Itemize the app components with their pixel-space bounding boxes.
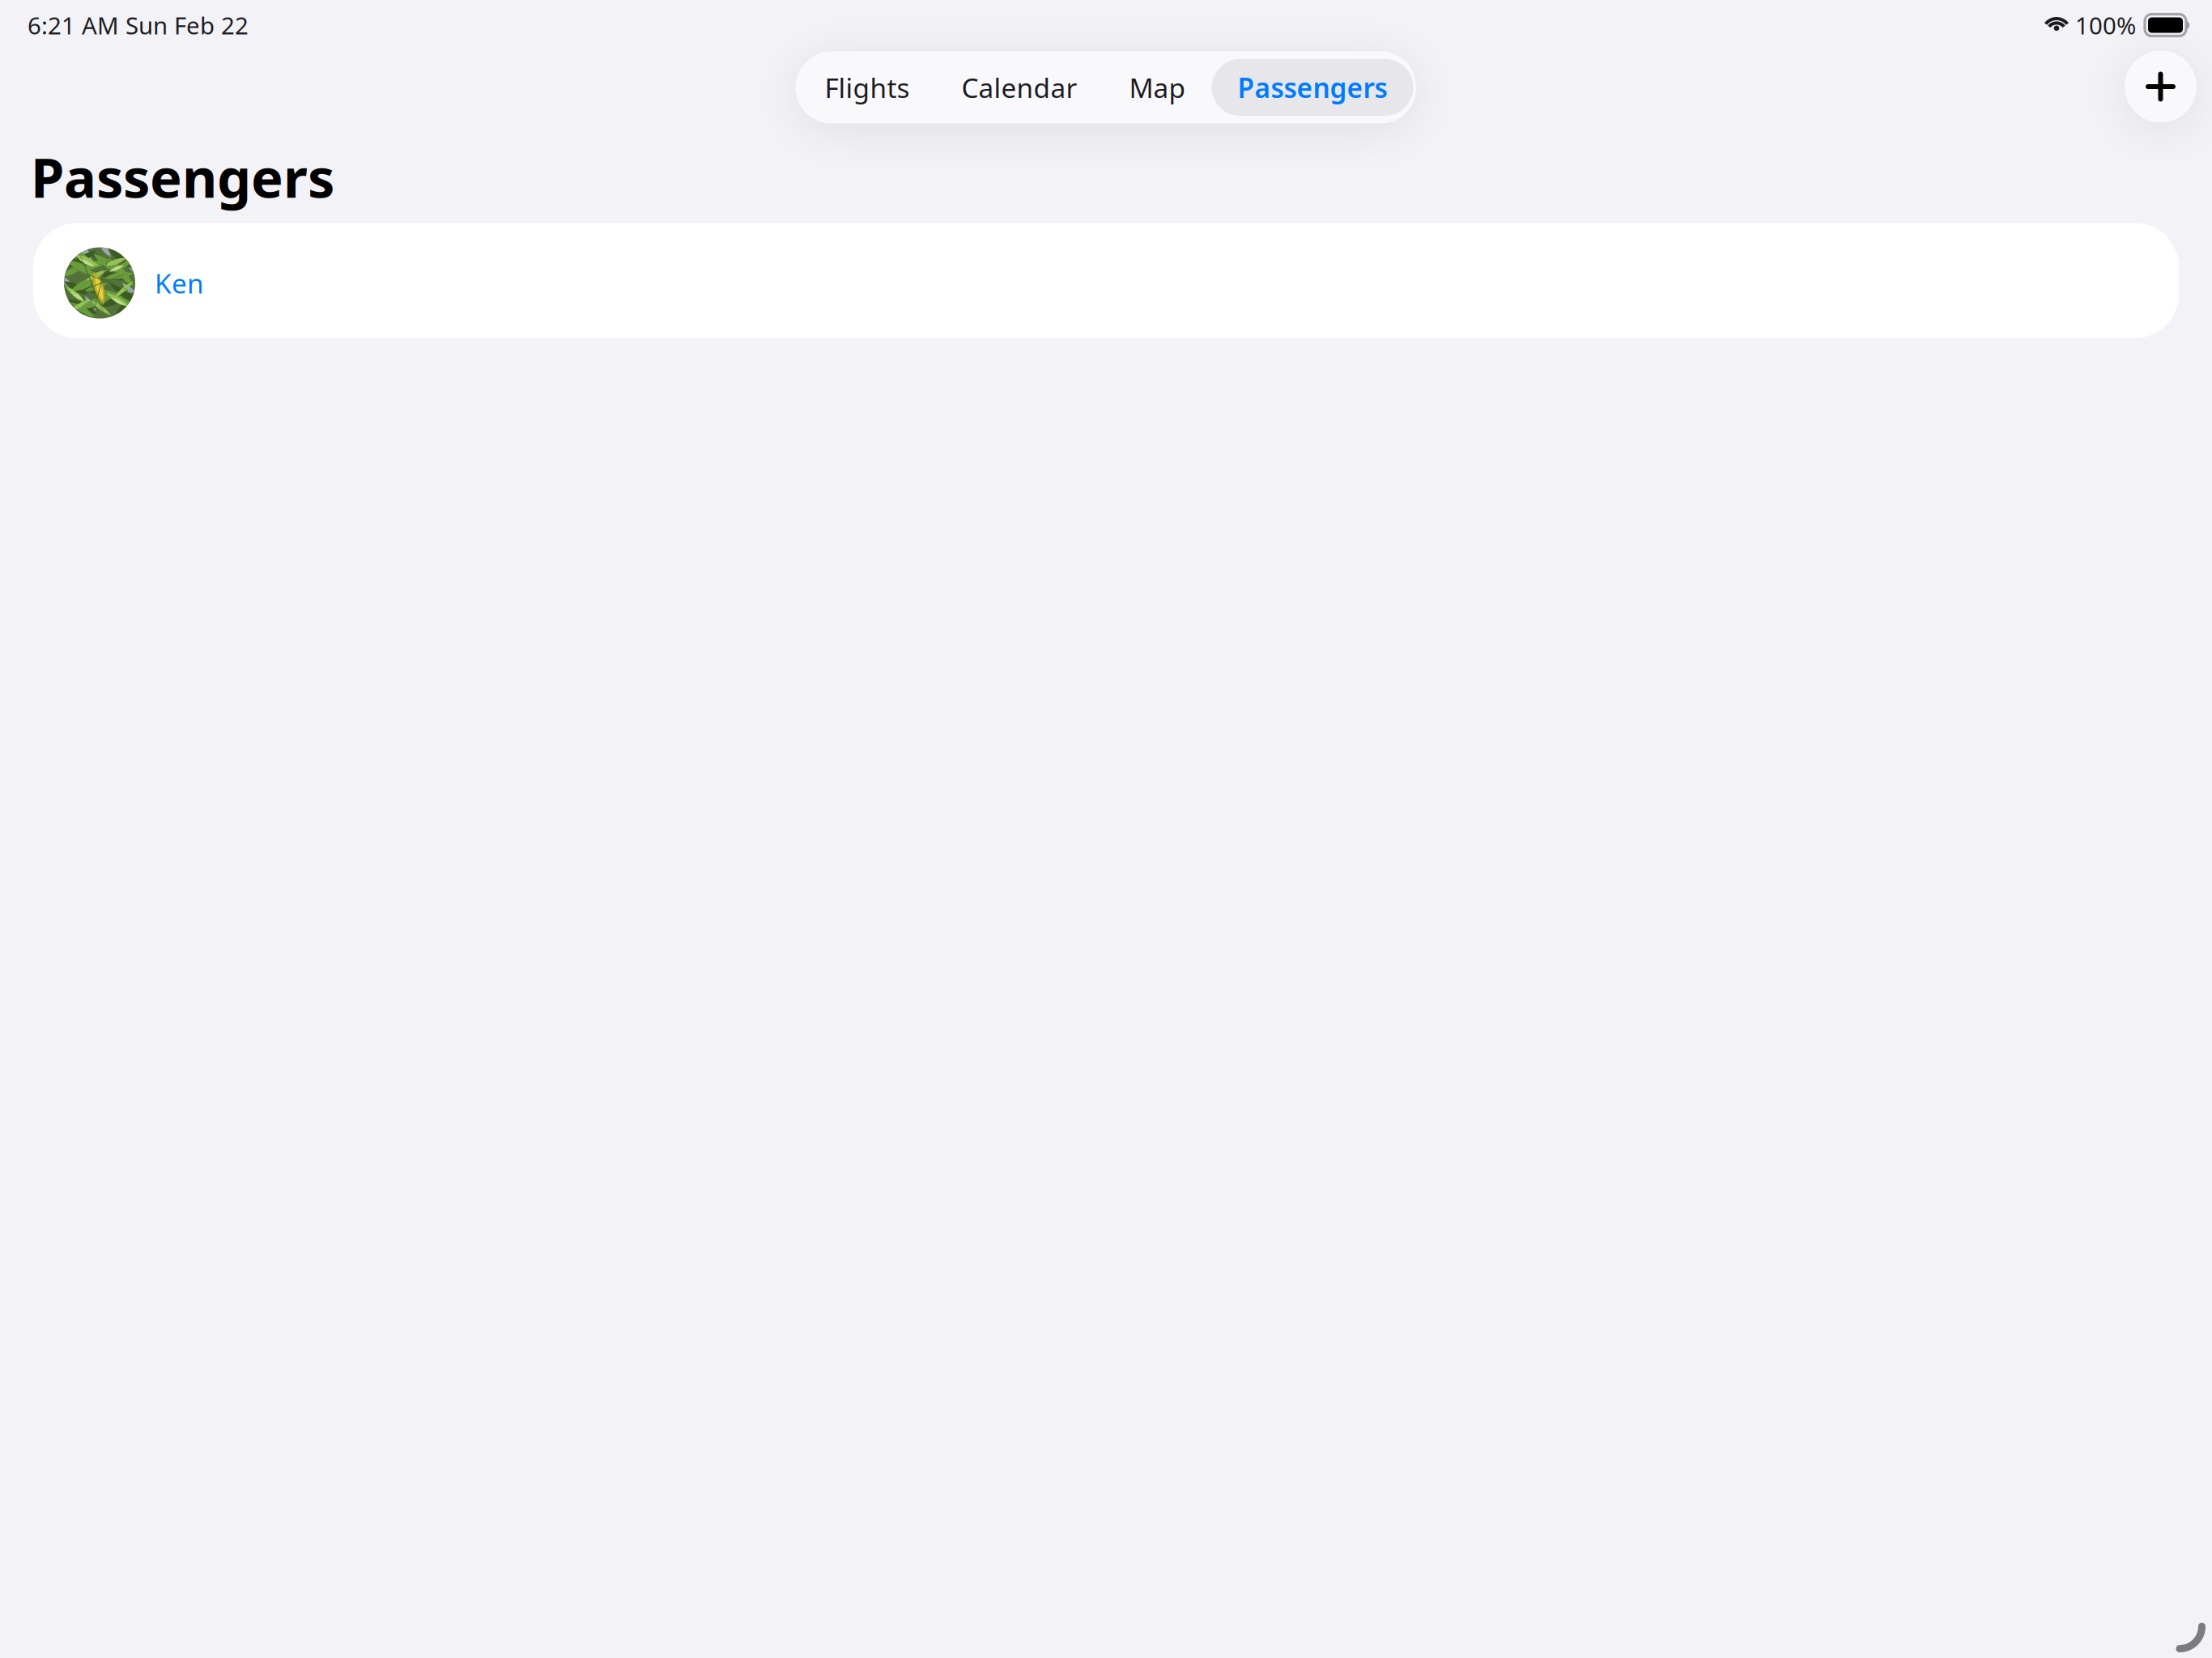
- button[interactable]: Ken: [33, 223, 2179, 338]
- staticText: Calendar: [961, 70, 1077, 105]
- staticText: Flights: [825, 70, 910, 105]
- staticText: Ken: [155, 265, 204, 301]
- button[interactable]: Calendar: [936, 59, 1103, 116]
- staticText: 100%: [2075, 9, 2136, 41]
- staticText: Passengers: [1238, 70, 1387, 105]
- button[interactable]: Passengers: [1212, 59, 1413, 116]
- button[interactable]: Flights: [799, 59, 936, 116]
- staticText: Sun Feb 22: [125, 9, 249, 41]
- staticText: Passengers: [31, 141, 334, 213]
- staticText: 6:21 AM: [28, 9, 119, 41]
- button[interactable]: Add: [2125, 51, 2197, 123]
- staticText: Map: [1129, 70, 1186, 105]
- button[interactable]: Map: [1103, 59, 1212, 116]
